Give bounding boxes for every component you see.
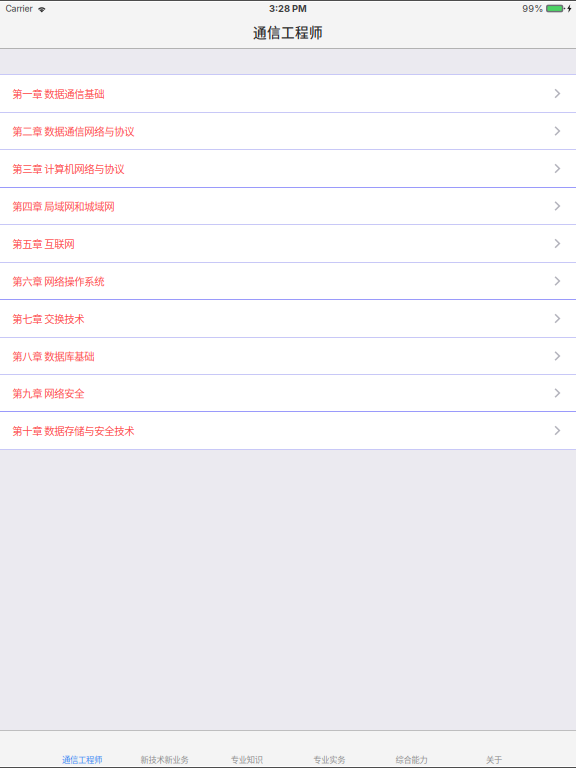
button[interactable]: 第一章 数据通信基础 [0, 75, 576, 113]
button[interactable]: 第二章 数据通信网络与协议 [0, 113, 576, 150]
staticText: 第三章 计算机网络与协议 [12, 161, 124, 176]
button[interactable]: 关于 [453, 731, 535, 766]
staticText: 通信工程师 [253, 22, 323, 41]
staticText: 第一章 数据通信基础 [12, 86, 104, 101]
staticText: 第九章 网络安全 [12, 385, 84, 401]
staticText: 第五章 互联网 [12, 236, 74, 251]
button[interactable]: 第六章 网络操作系统 [0, 263, 576, 300]
staticText: 关于 [486, 753, 502, 765]
staticText: 专业知识 [231, 753, 263, 765]
button[interactable]: 专业实务 [288, 731, 370, 766]
button[interactable]: 第五章 互联网 [0, 225, 576, 263]
button[interactable]: 第九章 网络安全 [0, 375, 576, 412]
button[interactable]: 第七章 交换技术 [0, 300, 576, 338]
staticText: 新技术新业务 [140, 753, 188, 765]
staticText: 第四章 局域网和城域网 [12, 198, 114, 214]
button[interactable]: 综合能力 [370, 731, 453, 766]
staticText: 3:28 PM [269, 3, 307, 14]
button[interactable]: 专业知识 [206, 731, 288, 766]
staticText: 第八章 数据库基础 [12, 348, 94, 364]
staticText: 99% [522, 3, 543, 14]
staticText: 第七章 交换技术 [12, 311, 84, 326]
staticText: 综合能力 [396, 753, 428, 765]
button[interactable]: 新技术新业务 [123, 731, 206, 766]
staticText: 第十章 数据存储与安全技术 [12, 423, 134, 438]
button[interactable]: 第四章 局域网和城域网 [0, 188, 576, 225]
staticText: 第六章 网络操作系统 [12, 273, 104, 289]
staticText: 专业实务 [313, 753, 345, 765]
staticText: Carrier [5, 3, 32, 14]
staticText: 第二章 数据通信网络与协议 [12, 123, 134, 139]
button[interactable]: 第十章 数据存储与安全技术 [0, 412, 576, 450]
button[interactable]: 第三章 计算机网络与协议 [0, 150, 576, 188]
staticText: 通信工程师 [62, 753, 102, 765]
button[interactable]: 第八章 数据库基础 [0, 338, 576, 375]
button[interactable]: 通信工程师 [41, 731, 123, 766]
